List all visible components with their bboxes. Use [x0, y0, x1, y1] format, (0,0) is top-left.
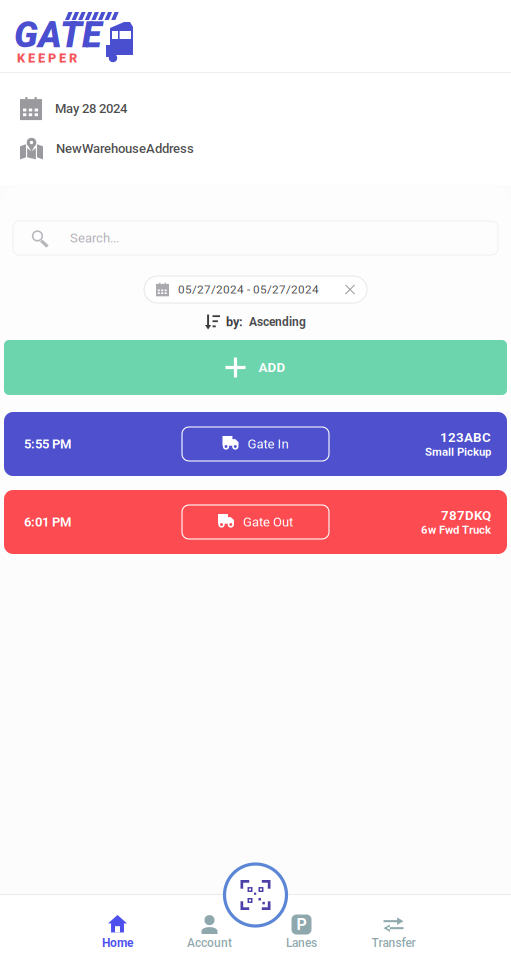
button[interactable]: Home: [71, 895, 163, 955]
staticText: ADD: [258, 360, 285, 375]
staticText: 6:01 PM: [24, 514, 71, 530]
staticText: Gate In: [247, 436, 288, 452]
staticText: May 28 2024: [55, 101, 127, 116]
button[interactable]: ADD: [4, 340, 507, 395]
staticText: K E E P E R: [17, 50, 77, 65]
staticText: Small Pickup: [425, 445, 491, 458]
staticText: P: [296, 915, 306, 934]
button[interactable]: 5:55 PM: [4, 412, 507, 476]
button[interactable]: 6:01 PM: [4, 490, 507, 554]
staticText: 05/27/2024 - 05/27/2024: [178, 283, 319, 296]
button[interactable]: Account: [163, 895, 255, 955]
button[interactable]: Scan QR code: [224, 864, 286, 926]
staticText: GATE: [14, 14, 102, 56]
button[interactable]: P: [255, 895, 347, 955]
staticText: Gate Out: [243, 514, 293, 530]
button[interactable]: 05/27/2024 - 05/27/2024: [144, 276, 367, 303]
staticText: Transfer: [371, 936, 415, 950]
staticText: Account: [187, 936, 232, 950]
staticText: 123ABC: [440, 429, 491, 445]
button[interactable]: Search...: [13, 221, 498, 255]
staticText: Search...: [70, 230, 119, 246]
staticText: 787DKQ: [441, 507, 491, 523]
staticText: Lanes: [286, 936, 317, 950]
staticText: 5:55 PM: [24, 436, 71, 452]
button[interactable]: Gate In: [182, 427, 329, 461]
button[interactable]: Transfer: [347, 895, 439, 955]
staticText: NewWarehouseAddress: [56, 141, 194, 156]
staticText: 6w Fwd Truck: [421, 523, 491, 536]
staticText: by:: [226, 315, 243, 329]
staticText: Ascending: [249, 315, 306, 329]
staticText: Home: [102, 936, 133, 950]
button[interactable]: Gate Out: [182, 505, 329, 539]
